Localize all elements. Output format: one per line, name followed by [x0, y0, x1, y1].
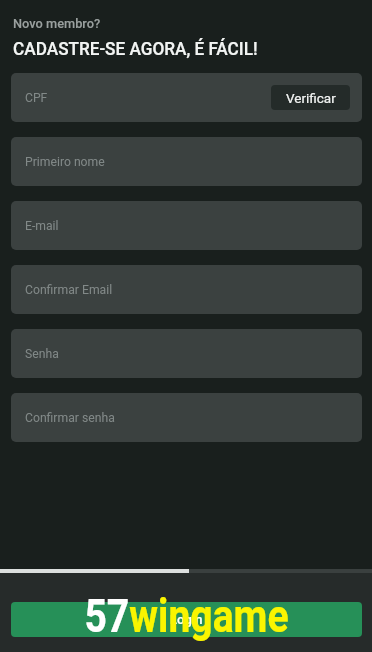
staticText: Confirmar Email	[25, 283, 113, 297]
staticText: CPF	[25, 91, 48, 105]
button[interactable]: Verificar	[271, 85, 350, 110]
button[interactable]: Senha	[11, 329, 362, 378]
button[interactable]: Primeiro nome	[11, 137, 362, 186]
staticText: Verificar	[286, 90, 336, 106]
staticText: Primeiro nome	[25, 155, 105, 169]
button[interactable]: Login	[11, 602, 362, 637]
button[interactable]: E-mail	[11, 201, 362, 250]
staticText: 57wingame	[84, 589, 289, 643]
staticText: Novo membro?	[13, 16, 101, 31]
staticText: E-mail	[25, 219, 59, 233]
button[interactable]: Confirmar Email	[11, 265, 362, 314]
button[interactable]: CPF	[11, 73, 362, 122]
staticText: Login	[170, 612, 203, 627]
button[interactable]: Confirmar senha	[11, 393, 362, 442]
staticText: CADASTRE-SE AGORA, É FÁCIL!	[13, 38, 258, 59]
staticText: Senha	[25, 347, 59, 361]
staticText: Confirmar senha	[25, 411, 115, 425]
